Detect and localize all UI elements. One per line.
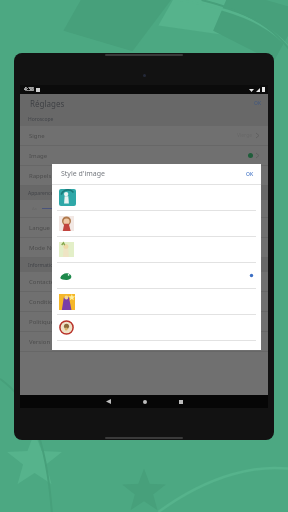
staticText: Image	[29, 152, 48, 160]
staticText: Version	[29, 338, 51, 346]
staticText: OK	[246, 171, 254, 178]
button[interactable]	[52, 315, 261, 340]
button[interactable]: Rappels	[20, 166, 268, 185]
staticText: Style d'image	[61, 169, 105, 179]
staticText: Réglages	[30, 98, 65, 109]
staticText: Activé	[238, 172, 253, 179]
button[interactable]: Contactez-nous	[20, 272, 268, 291]
staticText: Politique de confidentialité	[29, 318, 105, 326]
staticText: 5.3.5	[244, 338, 256, 345]
button[interactable]: Conditions	[20, 292, 268, 311]
button[interactable]	[52, 237, 261, 262]
staticText: Langue	[29, 224, 51, 232]
button[interactable]: OK	[248, 97, 268, 110]
button[interactable]: Mode Nuit	[20, 238, 268, 257]
staticText: 4:38	[24, 86, 34, 93]
button[interactable]: Image	[20, 146, 268, 165]
button[interactable]: Langue	[20, 218, 268, 237]
staticText: Rappels	[29, 172, 52, 180]
staticText: Mode Nuit	[29, 244, 59, 252]
button[interactable]: Version	[20, 332, 268, 351]
button[interactable]: Recent apps	[163, 397, 199, 407]
button[interactable]	[52, 185, 261, 210]
button[interactable]	[52, 211, 261, 236]
button[interactable]: OK	[239, 167, 261, 182]
staticText: Conditions	[29, 298, 60, 306]
staticText: OK	[254, 100, 262, 107]
staticText: Informations	[28, 262, 59, 269]
button[interactable]: Politique de confidentialité	[20, 312, 268, 331]
staticText: Apparence	[28, 190, 54, 197]
button[interactable]	[52, 289, 261, 314]
button[interactable]: Back	[90, 396, 127, 407]
button[interactable]	[52, 263, 261, 288]
staticText: Signe	[29, 132, 45, 140]
button[interactable]: Home	[127, 397, 163, 407]
staticText: Horoscope	[28, 116, 54, 123]
button[interactable]: Aa	[20, 200, 268, 217]
staticText: Contactez-nous	[29, 278, 73, 286]
staticText: Aa	[247, 204, 256, 214]
